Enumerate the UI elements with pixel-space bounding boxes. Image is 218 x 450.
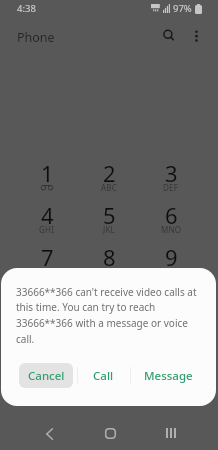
button[interactable]: Message: [136, 363, 201, 388]
button[interactable]: 6: [140, 199, 202, 241]
staticText: TUV: [101, 266, 117, 277]
button[interactable]: 8: [78, 241, 140, 283]
button[interactable]: Search: [156, 23, 180, 47]
button[interactable]: Home: [95, 418, 125, 448]
staticText: Message: [144, 368, 193, 384]
button[interactable]: 3: [140, 157, 202, 199]
button[interactable]: 1: [16, 157, 78, 199]
staticText: 1: [41, 158, 54, 188]
button[interactable]: More options: [184, 23, 208, 47]
button[interactable]: Recent apps: [156, 418, 186, 448]
staticText: 3: [165, 158, 178, 188]
staticText: Call: [93, 368, 114, 384]
staticText: 33666**366 can't receive video calls at …: [16, 285, 202, 346]
staticText: 4: [41, 200, 54, 230]
staticText: PQRS: [36, 266, 58, 277]
button[interactable]: 2: [78, 157, 140, 199]
staticText: Phone: [17, 29, 55, 46]
staticText: 4:38: [17, 2, 36, 15]
staticText: 6: [165, 200, 178, 230]
staticText: ABC: [101, 182, 117, 193]
staticText: 8: [103, 242, 116, 272]
staticText: 5: [103, 200, 116, 230]
button[interactable]: 5: [78, 199, 140, 241]
staticText: 2: [103, 158, 116, 188]
staticText: DEF: [163, 182, 179, 193]
button[interactable]: 4: [16, 199, 78, 241]
button[interactable]: Cancel: [19, 363, 73, 388]
staticText: Cancel: [28, 368, 65, 384]
staticText: 9: [165, 242, 178, 272]
staticText: 7: [41, 242, 54, 272]
button[interactable]: Phone: [6, 24, 66, 50]
staticText: GHI: [39, 224, 55, 235]
button[interactable]: Back: [34, 419, 64, 449]
staticText: JKL: [103, 224, 115, 235]
button[interactable]: Call: [83, 363, 123, 388]
staticText: WXYZ: [160, 266, 183, 277]
staticText: 97%: [173, 2, 192, 15]
staticText: MNO: [161, 224, 182, 235]
button[interactable]: 7: [16, 241, 78, 283]
button[interactable]: 9: [140, 241, 202, 283]
